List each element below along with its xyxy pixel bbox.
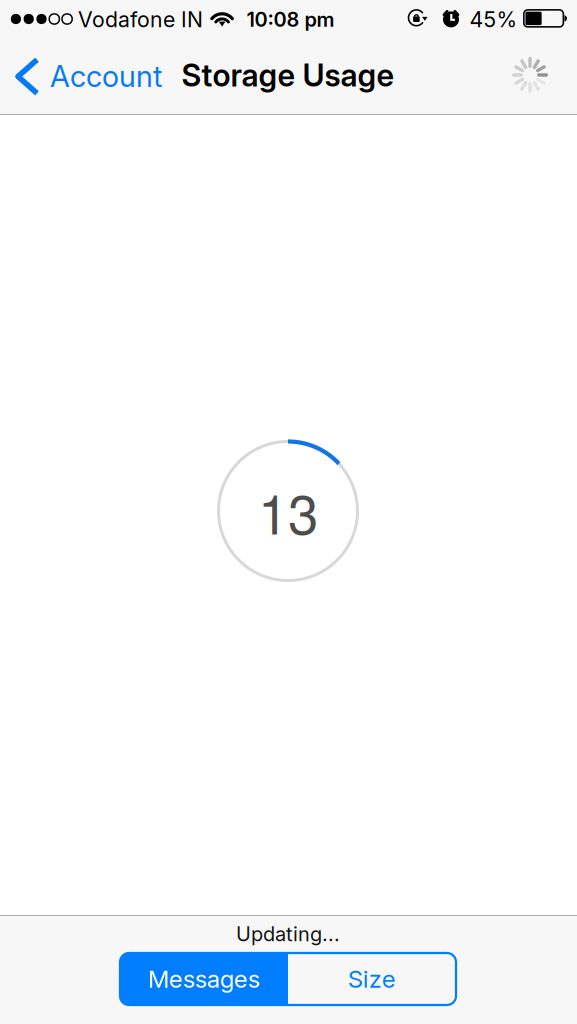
button[interactable]: Size xyxy=(288,953,456,1005)
button[interactable]: Messages xyxy=(120,953,288,1005)
staticText: Updating... xyxy=(236,922,340,946)
staticText: Size xyxy=(348,964,396,993)
staticText: 45% xyxy=(469,7,517,32)
staticText: 13 xyxy=(258,472,318,550)
button[interactable]: Account xyxy=(0,44,176,108)
staticText: Messages xyxy=(148,964,260,993)
staticText: 10:08 pm xyxy=(246,7,334,32)
staticText: Vodafone IN xyxy=(78,7,203,32)
staticText: Storage Usage xyxy=(181,57,394,94)
staticText: Account xyxy=(50,59,162,94)
button[interactable]: Loading xyxy=(503,48,556,101)
